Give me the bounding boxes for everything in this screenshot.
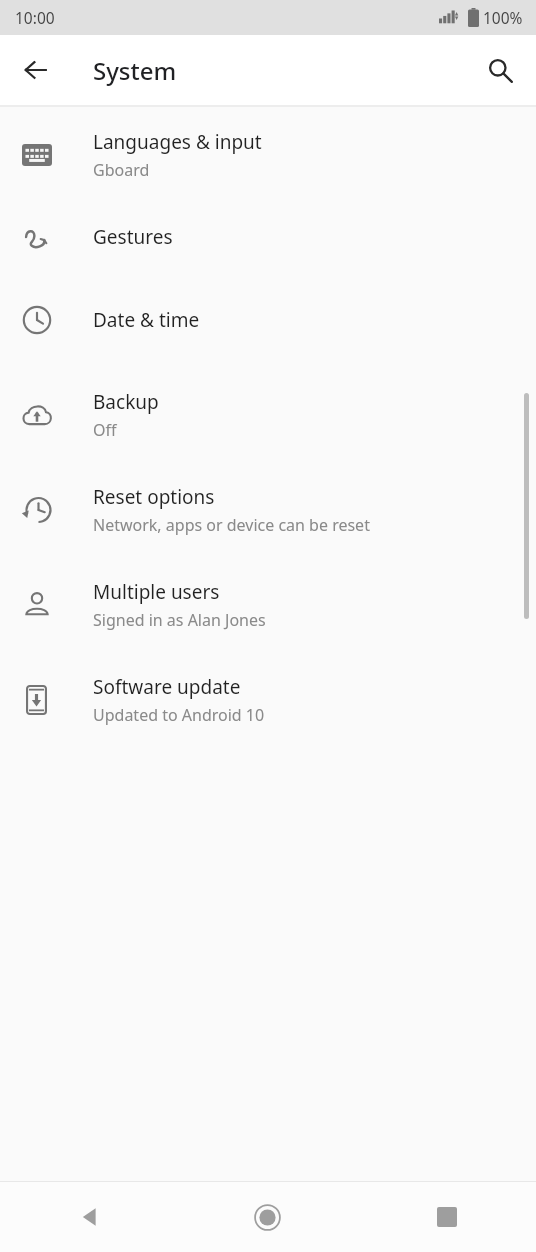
staticText: Updated to Android 10 [93,704,265,726]
staticText: Languages & input [93,129,262,155]
staticText: 100% [483,7,523,28]
staticText: Signed in as Alan Jones [93,609,266,631]
button[interactable]: Home [178,1182,357,1252]
button[interactable]: Reset options [0,462,536,557]
button[interactable]: Languages & input [0,107,536,202]
staticText: Date & time [93,307,200,333]
staticText: Gestures [93,224,173,250]
staticText: Network, apps or device can be reset [93,514,370,536]
button[interactable]: Search [474,44,526,96]
button[interactable]: Backup [0,367,536,462]
button[interactable]: Recent apps [357,1182,536,1252]
staticText: Off [93,419,117,441]
staticText: Multiple users [93,579,220,605]
staticText: Software update [93,674,241,700]
staticText: 10:00 [15,7,55,28]
button[interactable]: Back [0,1182,178,1252]
button[interactable]: Gestures [0,202,536,272]
button[interactable]: Date & time [0,272,536,367]
staticText: Reset options [93,484,215,510]
button[interactable]: Software update [0,652,536,747]
staticText: Gboard [93,159,150,181]
staticText: System [93,54,177,87]
staticText: Backup [93,389,159,415]
button[interactable]: Back [10,44,62,96]
button[interactable]: Multiple users [0,557,536,652]
